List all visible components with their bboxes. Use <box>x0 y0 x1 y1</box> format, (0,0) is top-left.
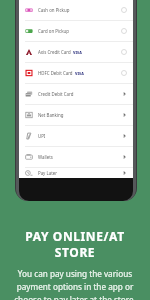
button[interactable]: Axis Credit Card <box>19 42 133 63</box>
staticText: VISA <box>73 50 82 55</box>
button[interactable]: Card on Pickup <box>19 21 133 42</box>
button[interactable]: Credit Debit Card <box>19 84 133 105</box>
button[interactable]: Cash on Pickup <box>19 0 133 21</box>
button[interactable]: Net Banking <box>19 105 133 126</box>
staticText: UPI <box>38 133 46 139</box>
staticText: You can pay using the various payment op… <box>8 268 142 300</box>
staticText: PAY ONLINE/AT STORE <box>8 228 142 260</box>
staticText: VISA <box>75 71 84 76</box>
button[interactable]: Wallets <box>19 147 133 168</box>
staticText: Wallets <box>38 154 53 160</box>
button[interactable]: Pay Later <box>19 168 133 178</box>
button[interactable]: UPI <box>19 126 133 147</box>
staticText: Credit Debit Card <box>38 91 74 97</box>
staticText: Net Banking <box>38 112 64 118</box>
staticText: Card on Pickup <box>38 28 69 34</box>
staticText: Cash on Pickup <box>38 7 70 13</box>
staticText: Axis Credit Card <box>38 49 71 55</box>
staticText: Pay Later <box>38 170 58 176</box>
button[interactable]: HDFC Debit Card <box>19 63 133 84</box>
staticText: HDFC Debit Card <box>38 70 73 76</box>
